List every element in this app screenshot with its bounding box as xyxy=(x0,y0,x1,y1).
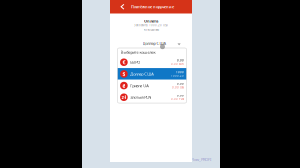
staticText: 0.00 UA xyxy=(172,86,184,89)
button[interactable]: $ xyxy=(117,68,186,80)
staticText: Доллар США xyxy=(130,71,154,76)
staticText: 0.00 xyxy=(177,59,184,62)
staticText: 0.00 EUR xyxy=(171,62,184,66)
staticText: $ xyxy=(122,70,125,77)
staticText: Оплата xyxy=(144,18,158,24)
staticText: Доллар США xyxy=(142,41,166,46)
staticText: ₴ xyxy=(122,82,125,89)
staticText: Платёжное поручение xyxy=(131,4,174,9)
staticText: zł xyxy=(121,94,126,101)
staticText: 0.00 PLN xyxy=(171,97,184,101)
staticText: Заплатить: 1000.20 USD xyxy=(134,23,168,27)
button[interactable]: € xyxy=(117,56,186,68)
staticText: 1000.20 xyxy=(171,74,184,77)
button[interactable]: Назад xyxy=(114,0,131,13)
button[interactable]: ₴ xyxy=(117,80,186,91)
staticText: ЕВРО xyxy=(130,60,140,65)
button[interactable]: Доллар США xyxy=(138,40,182,49)
staticText: Из кошелька xyxy=(143,28,158,31)
staticText: 1000 xyxy=(176,70,184,74)
staticText: Выберите кошелек xyxy=(120,49,155,55)
staticText: 0.00 xyxy=(177,82,184,85)
staticText: Гривна UA xyxy=(130,83,149,88)
button[interactable]: zł xyxy=(117,91,186,103)
staticText: € xyxy=(122,59,125,66)
staticText: Злотый PLN xyxy=(130,95,151,100)
staticText: @CashFlow_PROFI xyxy=(178,157,211,162)
staticText: 0.00 xyxy=(177,94,184,97)
